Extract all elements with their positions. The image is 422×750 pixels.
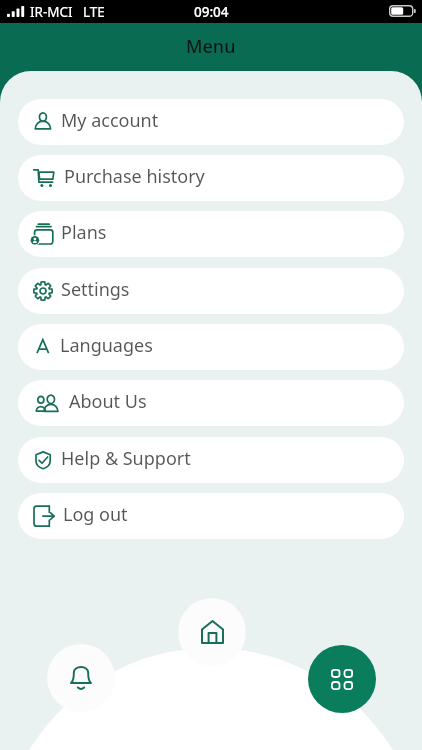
staticText: Log out [63, 502, 128, 527]
button[interactable]: Help & Support [18, 437, 404, 483]
staticText: My account [61, 108, 159, 133]
staticText: Help & Support [61, 446, 191, 471]
staticText: Settings [61, 277, 130, 302]
staticText: Languages [60, 333, 153, 358]
button[interactable]: All apps [308, 645, 376, 713]
staticText: 09:04 [194, 3, 229, 21]
button[interactable]: My account [18, 99, 404, 145]
button[interactable]: Purchase history [18, 155, 404, 201]
staticText: Plans [61, 220, 107, 245]
staticText: Purchase history [64, 164, 205, 189]
button[interactable]: Languages [18, 324, 404, 370]
button[interactable]: Plans [18, 211, 404, 257]
button[interactable]: Log out [18, 493, 404, 539]
button[interactable]: Notifications [47, 644, 115, 712]
button[interactable]: Home [178, 598, 246, 666]
staticText: IR-MCI [30, 3, 73, 21]
staticText: LTE [83, 3, 105, 21]
staticText: Menu [186, 34, 236, 59]
staticText: About Us [69, 389, 147, 414]
button[interactable]: About Us [18, 380, 404, 426]
button[interactable]: Settings [18, 268, 404, 314]
